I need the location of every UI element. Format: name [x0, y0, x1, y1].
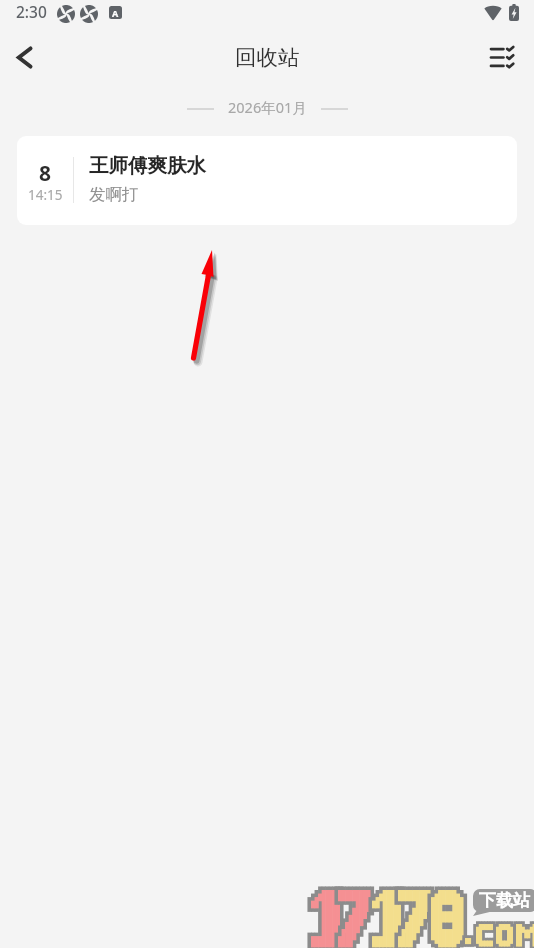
staticText: 8 [39, 159, 52, 188]
staticText: 王师傅爽肤水 [89, 153, 206, 178]
staticText: 2026年01月 [228, 97, 307, 117]
staticText: 回收站 [235, 44, 300, 71]
staticText: 2:30 [16, 1, 47, 22]
staticText: 14:15 [28, 186, 63, 204]
button[interactable]: 8 [17, 136, 517, 225]
button[interactable]: Select items [479, 34, 525, 80]
staticText: 发啊打 [89, 184, 139, 205]
staticText: 下载站 [479, 890, 530, 911]
button[interactable]: Back [1, 34, 47, 80]
staticText: A [112, 7, 119, 19]
